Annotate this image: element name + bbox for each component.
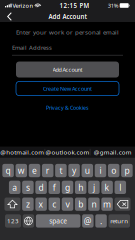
button[interactable]: .: [95, 214, 107, 228]
button[interactable]: @outlook.com: [45, 147, 90, 158]
button[interactable]: t: [55, 164, 67, 177]
staticText: Add Account: [52, 66, 82, 73]
staticText: f: [53, 181, 56, 193]
button[interactable]: Shift: [4, 197, 20, 211]
button[interactable]: q: [2, 164, 14, 177]
button[interactable]: n: [88, 197, 100, 211]
button[interactable]: 123: [5, 214, 21, 228]
staticText: m: [103, 198, 111, 210]
staticText: .: [100, 215, 102, 227]
staticText: u: [85, 165, 90, 176]
staticText: i: [99, 165, 101, 176]
staticText: e: [32, 165, 37, 176]
button[interactable]: b: [75, 197, 86, 211]
button[interactable]: a: [9, 181, 20, 194]
button[interactable]: Privacy & Cookies: [40, 103, 95, 113]
button[interactable]: Next keyboard: [23, 214, 34, 228]
staticText: w: [18, 165, 25, 176]
button[interactable]: space: [36, 214, 80, 228]
staticText: Email Address: [12, 43, 52, 51]
staticText: o: [111, 165, 116, 176]
button[interactable]: g: [62, 181, 73, 194]
staticText: y: [72, 165, 76, 176]
staticText: Add Account: [48, 12, 86, 21]
staticText: k: [105, 181, 110, 193]
staticText: z: [26, 198, 30, 210]
button[interactable]: c: [48, 197, 60, 211]
staticText: t: [59, 165, 62, 176]
button[interactable]: @gmail.com: [90, 147, 135, 158]
button[interactable]: j: [88, 181, 100, 194]
button[interactable]: r: [42, 164, 53, 177]
button[interactable]: Back: [3, 11, 16, 22]
staticText: @hotmail.com: [0, 148, 44, 156]
staticText: @outlook.com: [45, 148, 89, 156]
button[interactable]: Add Account: [16, 62, 119, 78]
button[interactable]: Delete: [115, 197, 131, 211]
button[interactable]: @hotmail.com: [0, 147, 45, 158]
button[interactable]: s: [22, 181, 34, 194]
button[interactable]: e: [29, 164, 40, 177]
staticText: a: [12, 181, 17, 193]
staticText: j: [93, 181, 95, 193]
staticText: Privacy & Cookies: [46, 104, 89, 111]
staticText: 31%: [108, 2, 120, 9]
button[interactable]: v: [62, 197, 73, 211]
button[interactable]: o: [108, 164, 119, 177]
button[interactable]: x: [35, 197, 47, 211]
button[interactable]: i: [95, 164, 106, 177]
staticText: @gmail.com: [94, 148, 132, 156]
staticText: 123: [7, 217, 19, 225]
staticText: h: [78, 181, 83, 193]
button[interactable]: k: [101, 181, 113, 194]
button[interactable]: f: [48, 181, 60, 194]
staticText: Verizon: [12, 2, 35, 9]
button[interactable]: Create New Account: [16, 82, 119, 96]
staticText: x: [39, 198, 44, 210]
staticText: Enter your work or personal email: [16, 28, 119, 36]
staticText: d: [39, 181, 44, 193]
button[interactable]: p: [121, 164, 133, 177]
staticText: 12:15 PM: [59, 1, 89, 10]
staticText: p: [124, 165, 129, 176]
button[interactable]: y: [68, 164, 80, 177]
button[interactable]: u: [81, 164, 93, 177]
staticText: space: [49, 216, 67, 225]
staticText: v: [65, 198, 69, 210]
button[interactable]: d: [35, 181, 47, 194]
button[interactable]: w: [15, 164, 27, 177]
staticText: c: [52, 198, 56, 210]
button[interactable]: h: [75, 181, 86, 194]
button[interactable]: m: [101, 197, 113, 211]
staticText: n: [91, 198, 96, 210]
staticText: return: [110, 217, 128, 225]
button[interactable]: z: [22, 197, 34, 211]
staticText: l: [119, 181, 121, 193]
button[interactable]: l: [115, 181, 126, 194]
staticText: b: [78, 198, 83, 210]
staticText: g: [65, 181, 70, 193]
staticText: q: [6, 165, 11, 176]
button[interactable]: return: [108, 214, 130, 228]
staticText: Create New Account: [43, 85, 92, 92]
staticText: @: [84, 215, 92, 227]
staticText: r: [46, 165, 50, 176]
button[interactable]: @: [82, 214, 94, 228]
staticText: s: [26, 181, 30, 193]
